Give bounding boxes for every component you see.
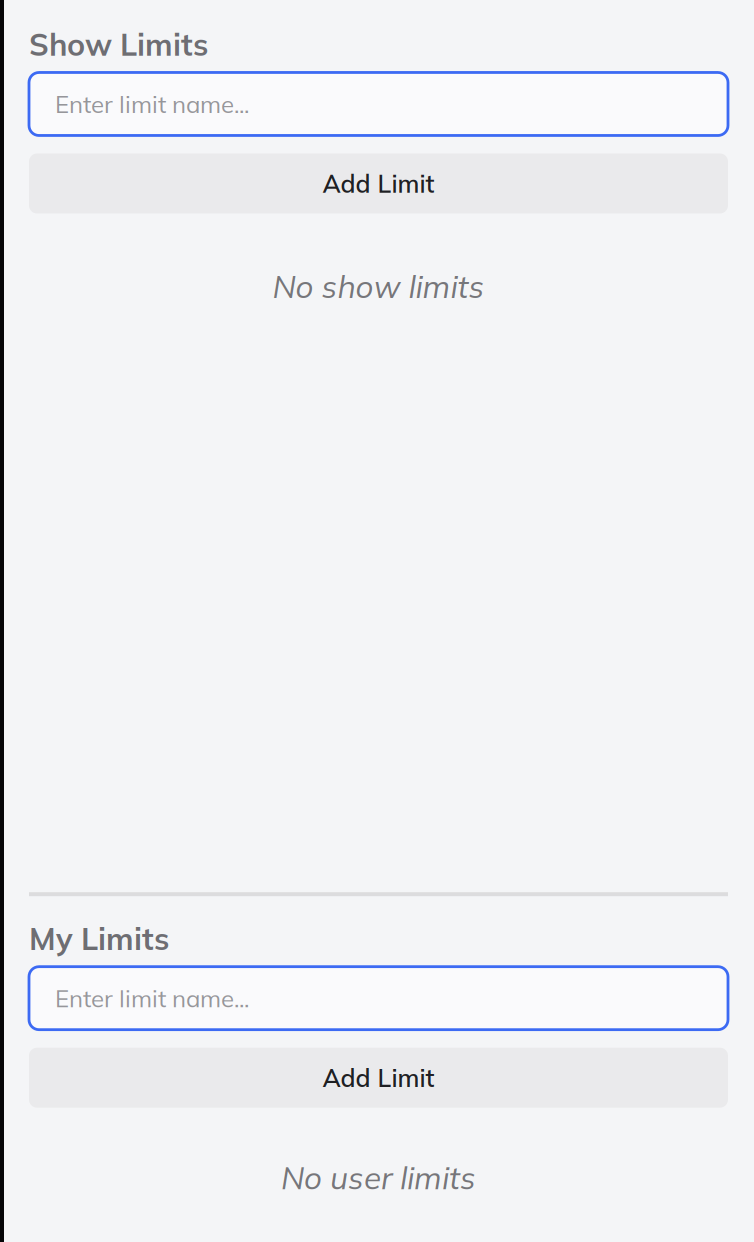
staticText: Enter limit name... bbox=[55, 89, 249, 119]
staticText: No show limits bbox=[272, 266, 484, 306]
staticText: Show Limits bbox=[29, 25, 208, 63]
staticText: No user limits bbox=[281, 1158, 476, 1197]
staticText: My Limits bbox=[29, 919, 169, 958]
button[interactable]: Enter limit name bbox=[29, 72, 728, 135]
staticText: Add Limit bbox=[322, 168, 434, 199]
staticText: Add Limit bbox=[322, 1062, 434, 1093]
button[interactable]: Add Limit bbox=[29, 1048, 728, 1108]
staticText: Enter limit name... bbox=[55, 983, 249, 1013]
button[interactable]: Enter limit name bbox=[29, 967, 728, 1030]
button[interactable]: Add Limit bbox=[29, 153, 728, 213]
